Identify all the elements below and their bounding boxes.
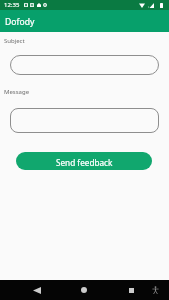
- button[interactable]: Home: [65, 280, 103, 300]
- button[interactable]: Accessibility: [145, 280, 165, 300]
- staticText: Dofody: [5, 16, 35, 28]
- staticText: Send feedback: [56, 157, 113, 168]
- staticText: Message: [4, 88, 30, 96]
- button[interactable]: Send feedback: [16, 152, 152, 170]
- button[interactable]: Back: [18, 280, 56, 300]
- staticText: Subject: [4, 37, 25, 45]
- button[interactable]: Subject input field: [10, 55, 159, 75]
- staticText: 12:35: [4, 1, 20, 9]
- button[interactable]: Recent apps: [112, 280, 150, 300]
- button[interactable]: Message input field: [10, 108, 159, 133]
